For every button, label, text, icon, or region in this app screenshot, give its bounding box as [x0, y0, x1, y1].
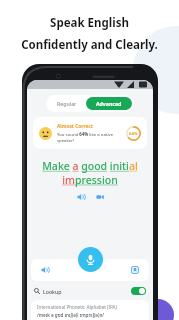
staticText: Speak English [50, 15, 129, 31]
button[interactable]: Almost Correct [33, 117, 147, 149]
button[interactable]: Bookmark [129, 264, 141, 276]
staticText: 64% [129, 131, 138, 137]
button[interactable]: Play audio [75, 191, 86, 202]
staticText: Regular [57, 100, 77, 107]
button[interactable]: Play video [94, 191, 105, 202]
staticText: Make a good initial impression [34, 159, 146, 187]
staticText: /meɪk ə ɡʊd ɪnɪʃ(ə)l ɪmprɛʃ(ə)n/ [37, 312, 105, 318]
button[interactable]: Regular [48, 97, 86, 110]
staticText: Lookup [43, 288, 62, 295]
button[interactable]: Record [78, 247, 103, 272]
staticText: International Phonetic Alphabet (IPA) [37, 304, 117, 310]
staticText: Advanced [96, 100, 122, 107]
button[interactable]: Listen [39, 264, 51, 276]
button[interactable]: Lookup [27, 285, 153, 297]
staticText: Confidently and Clearly. [21, 37, 158, 53]
staticText: You sound 64% like a native speaker! [57, 131, 123, 143]
button[interactable]: Advanced [86, 97, 132, 110]
staticText: Almost Correct [57, 123, 93, 130]
